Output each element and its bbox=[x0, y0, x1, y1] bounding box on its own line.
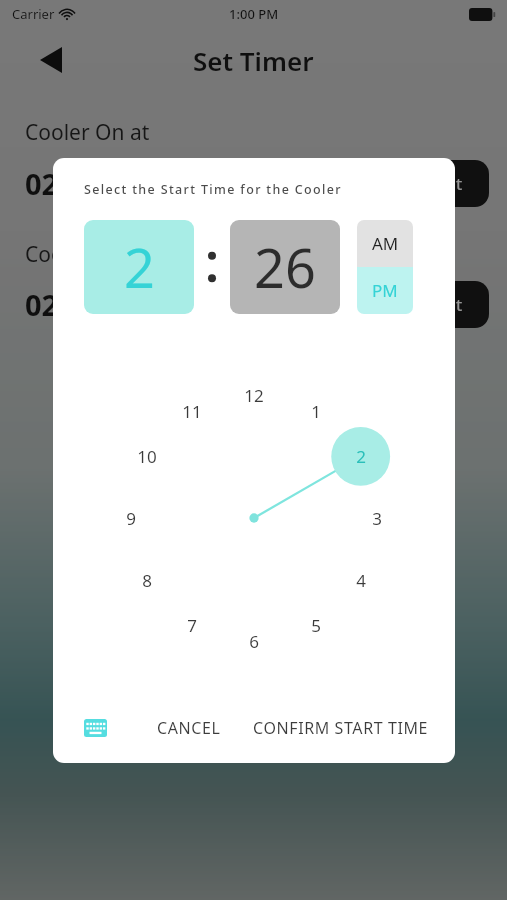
staticText: Select the Start Time for the Cooler bbox=[84, 181, 342, 198]
staticText: 1:00 PM bbox=[229, 5, 279, 23]
staticText: 1 bbox=[311, 400, 321, 423]
button[interactable]: 12 bbox=[237, 378, 271, 412]
staticText: PM bbox=[372, 279, 398, 302]
staticText: 2 bbox=[124, 230, 155, 304]
button[interactable]: Switch to keyboard input bbox=[73, 706, 117, 750]
staticText: Set Timer bbox=[193, 43, 314, 78]
button[interactable]: 26 bbox=[230, 220, 340, 314]
staticText: 02:26 PM bbox=[25, 285, 153, 324]
button[interactable]: 6 bbox=[237, 624, 271, 658]
staticText: 02:26 PM bbox=[25, 164, 153, 203]
staticText: 8 bbox=[142, 569, 152, 592]
button[interactable]: 2 bbox=[344, 439, 378, 473]
button[interactable]: Back bbox=[28, 37, 74, 83]
button[interactable]: 8 bbox=[130, 563, 164, 597]
button[interactable]: 5 bbox=[299, 608, 333, 642]
button[interactable]: CANCEL bbox=[147, 709, 231, 747]
staticText: AM bbox=[372, 232, 399, 255]
button[interactable]: 11 bbox=[175, 394, 209, 428]
staticText: CONFIRM START TIME bbox=[253, 717, 429, 739]
staticText: 3 bbox=[372, 507, 382, 530]
button[interactable]: 7 bbox=[175, 608, 209, 642]
button[interactable]: 3 bbox=[360, 501, 394, 535]
staticText: Set bbox=[437, 172, 463, 195]
button[interactable]: 4 bbox=[344, 563, 378, 597]
staticText: 26 bbox=[254, 230, 316, 304]
staticText: 9 bbox=[126, 507, 136, 530]
staticText: Carrier bbox=[12, 5, 55, 23]
staticText: CANCEL bbox=[157, 717, 221, 739]
button[interactable]: 10 bbox=[130, 439, 164, 473]
staticText: Cooler On at bbox=[25, 118, 150, 147]
staticText: 7 bbox=[187, 614, 197, 637]
staticText: 10 bbox=[137, 445, 157, 468]
staticText: 6 bbox=[249, 630, 259, 653]
staticText: 2 bbox=[356, 445, 366, 468]
button[interactable]: 9 bbox=[114, 501, 148, 535]
staticText: Cooler Off at bbox=[25, 240, 151, 269]
staticText: 4 bbox=[356, 569, 366, 592]
button[interactable]: AM bbox=[357, 220, 413, 267]
button[interactable]: PM bbox=[357, 267, 413, 314]
button[interactable]: Set bbox=[411, 281, 489, 328]
button[interactable]: CONFIRM START TIME bbox=[249, 709, 433, 747]
staticText: Set bbox=[437, 293, 463, 316]
button[interactable]: Set bbox=[411, 160, 489, 207]
button[interactable]: 1 bbox=[299, 394, 333, 428]
staticText: 5 bbox=[311, 614, 321, 637]
staticText: 11 bbox=[182, 400, 202, 423]
staticText: 12 bbox=[244, 384, 264, 407]
button[interactable]: 2 bbox=[84, 220, 194, 314]
